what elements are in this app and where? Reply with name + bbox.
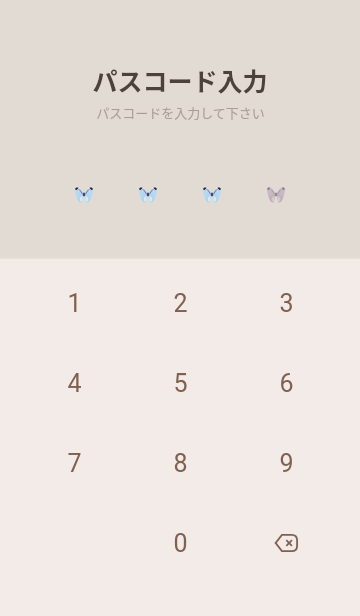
staticText: 4 [67,369,82,398]
staticText: 3 [279,289,294,318]
staticText: 6 [279,369,294,398]
staticText: 5 [173,369,188,398]
button[interactable]: 3 [233,263,339,343]
staticText: パスコードを入力して下さい [96,103,265,122]
staticText: パスコード入力 [92,62,268,98]
button[interactable]: 7 [21,423,127,503]
staticText: 9 [279,449,294,478]
button[interactable]: 4 [21,343,127,423]
button[interactable]: 9 [233,423,339,503]
staticText: 7 [67,449,82,478]
staticText: 2 [173,289,188,318]
staticText: 8 [173,449,188,478]
button[interactable]: 0 [127,503,233,583]
button[interactable]: 1 [21,263,127,343]
staticText: 0 [173,529,188,558]
button[interactable]: Delete [233,503,339,583]
staticText: 1 [67,289,82,318]
button[interactable]: 6 [233,343,339,423]
button[interactable]: 8 [127,423,233,503]
button[interactable]: 5 [127,343,233,423]
button[interactable]: 2 [127,263,233,343]
